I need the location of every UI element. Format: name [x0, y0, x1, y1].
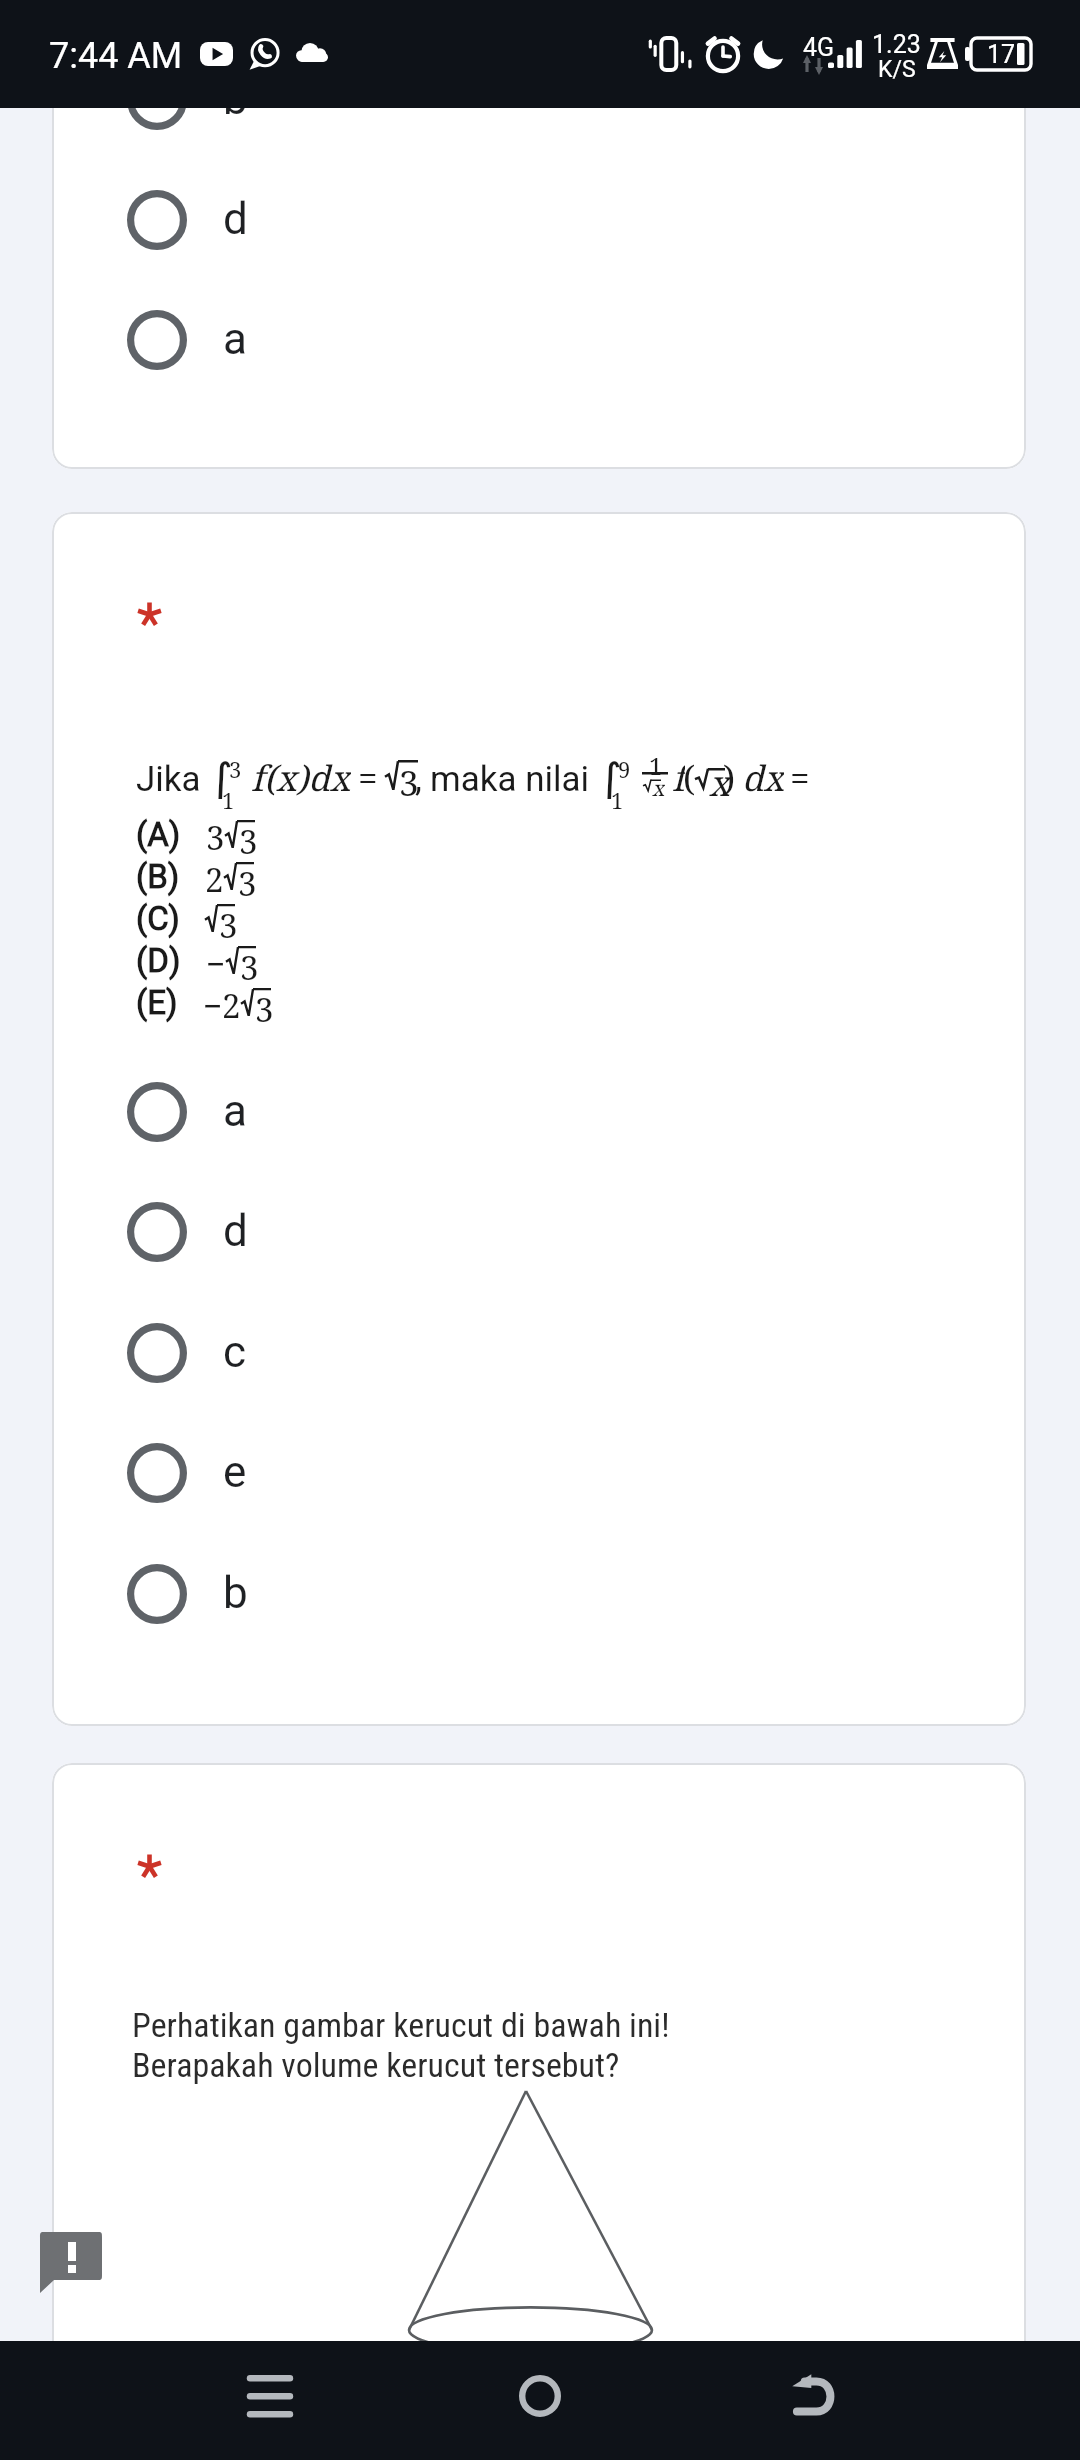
- staticText: e: [223, 1446, 247, 1498]
- staticText: K/S: [878, 56, 916, 83]
- staticText: (E): [136, 983, 178, 1022]
- staticText: 3: [206, 815, 225, 857]
- staticText: 7:44 AM: [49, 35, 183, 77]
- staticText: 3: [219, 903, 238, 945]
- button[interactable]: b: [52, 40, 1026, 160]
- staticText: c: [223, 1326, 247, 1378]
- staticText: =: [790, 754, 810, 800]
- button[interactable]: Recent apps: [215, 2341, 325, 2451]
- button[interactable]: a: [52, 280, 1026, 400]
- staticText: 17: [987, 40, 1016, 69]
- staticText: 3: [240, 945, 259, 987]
- staticText: Perhatikan gambar kerucut di bawah ini! …: [132, 2005, 670, 2085]
- staticText: f: [672, 754, 685, 800]
- button[interactable]: d: [52, 160, 1026, 280]
- button[interactable]: Report a problem: [40, 2232, 102, 2294]
- staticText: a: [223, 1085, 247, 1137]
- button[interactable]: c: [52, 1293, 1026, 1413]
- staticText: −: [206, 941, 226, 983]
- staticText: d: [223, 193, 248, 245]
- button[interactable]: e: [52, 1413, 1026, 1533]
- staticText: (A): [136, 815, 181, 854]
- staticText: 1.23: [872, 30, 921, 59]
- staticText: f(x)dx: [251, 754, 351, 800]
- staticText: dx: [742, 754, 784, 800]
- button[interactable]: Home: [485, 2341, 595, 2451]
- button[interactable]: b: [52, 1534, 1026, 1654]
- staticText: 3: [239, 819, 258, 861]
- staticText: b: [223, 1567, 248, 1619]
- staticText: 2: [205, 857, 224, 899]
- staticText: b: [223, 73, 248, 125]
- staticText: (: [683, 754, 696, 800]
- staticText: d: [223, 1205, 248, 1257]
- staticText: ∫: [209, 753, 233, 799]
- staticText: maka nilai: [430, 759, 590, 800]
- staticText: (D): [136, 941, 181, 980]
- button[interactable]: Back: [757, 2341, 867, 2451]
- staticText: 1: [649, 749, 663, 782]
- staticText: x: [652, 774, 665, 802]
- staticText: 4G: [803, 33, 835, 62]
- staticText: 3: [229, 754, 242, 784]
- staticText: ∫: [598, 753, 622, 799]
- staticText: 3: [255, 987, 274, 1029]
- staticText: ): [723, 754, 736, 800]
- staticText: Jika: [136, 759, 201, 800]
- staticText: a: [223, 313, 247, 365]
- button[interactable]: d: [52, 1172, 1026, 1292]
- staticText: 3: [399, 759, 419, 805]
- staticText: (B): [136, 857, 180, 896]
- staticText: =: [358, 754, 378, 800]
- staticText: (C): [136, 899, 180, 938]
- staticText: 1: [222, 785, 235, 815]
- staticText: x: [709, 759, 730, 805]
- button[interactable]: a: [52, 1052, 1026, 1172]
- staticText: ,: [415, 759, 422, 800]
- staticText: 9: [618, 754, 631, 784]
- staticText: −2: [203, 983, 241, 1025]
- staticText: 1: [611, 785, 624, 815]
- staticText: 3: [238, 861, 257, 903]
